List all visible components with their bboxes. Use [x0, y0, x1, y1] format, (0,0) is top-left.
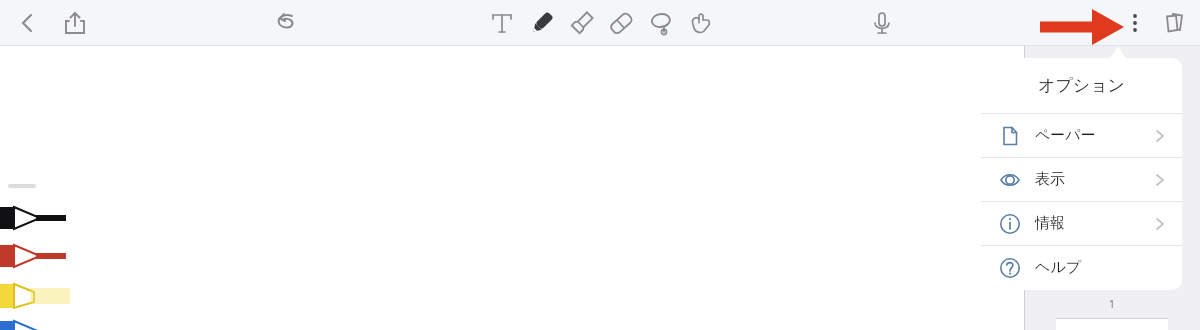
button[interactable]: Highlighter tool [566, 7, 598, 39]
button[interactable]: Eraser tool [605, 7, 637, 39]
button[interactable]: Hand tool [684, 7, 716, 39]
button[interactable]: More options [1119, 7, 1151, 39]
button[interactable]: 表示 [981, 158, 1182, 201]
button[interactable]: ヘルプ [981, 246, 1182, 289]
button[interactable]: ペーパー [981, 114, 1182, 157]
button[interactable]: Share [59, 7, 91, 39]
staticText: ペーパー [1035, 126, 1096, 145]
staticText: 1 [1024, 296, 1200, 311]
button[interactable]: Lasso tool [645, 7, 677, 39]
staticText: 表示 [1035, 170, 1065, 189]
button[interactable]: Pages [1158, 7, 1190, 39]
button[interactable]: Voice memo [866, 7, 898, 39]
button[interactable]: Back [12, 7, 44, 39]
button[interactable]: Text tool [486, 7, 518, 39]
button[interactable]: Pen tool [526, 7, 558, 39]
staticText: 情報 [1035, 214, 1065, 233]
button[interactable]: 情報 [981, 202, 1182, 245]
staticText: オプション [1038, 75, 1125, 96]
button[interactable]: Undo [270, 7, 302, 39]
staticText: ヘルプ [1035, 258, 1082, 277]
button[interactable]: Pen palette [0, 172, 48, 330]
